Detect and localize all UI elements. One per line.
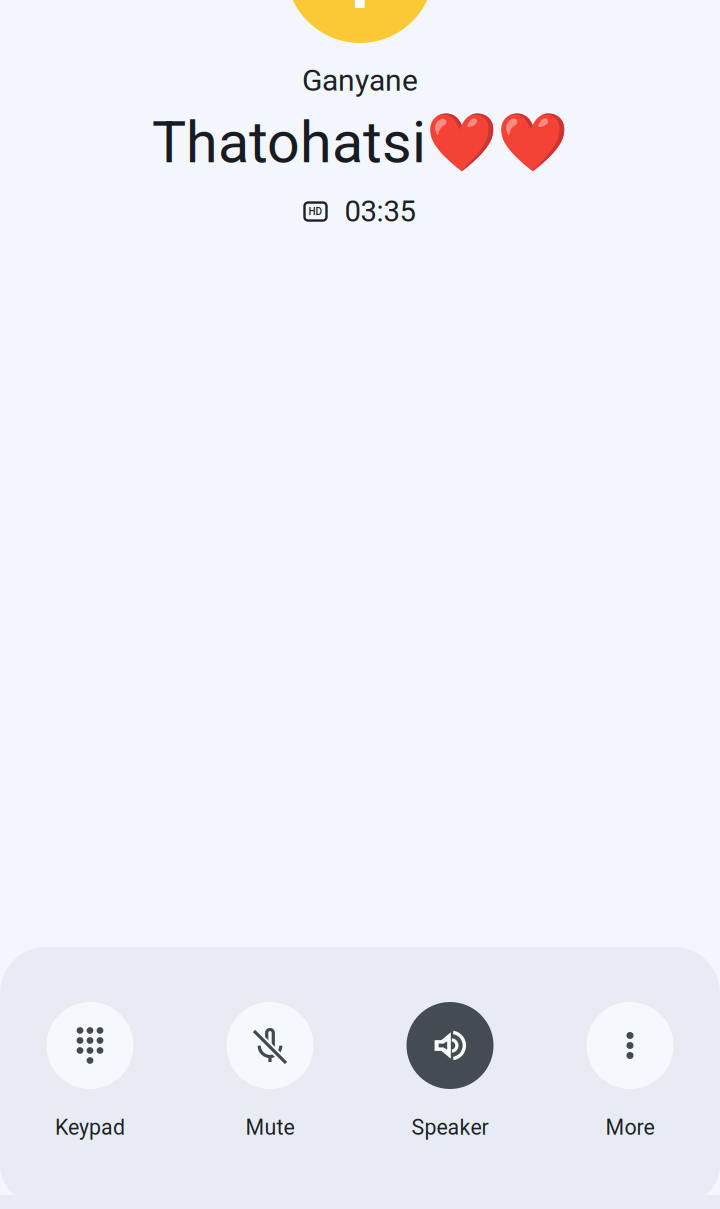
- staticText: Keypad: [55, 1115, 125, 1140]
- staticText: T: [328, 0, 392, 34]
- button[interactable]: Mute: [180, 1002, 360, 1140]
- staticText: Speaker: [411, 1115, 488, 1140]
- button[interactable]: More: [540, 1002, 720, 1140]
- staticText: Mute: [245, 1115, 294, 1140]
- staticText: Thatohatsi❤️❤️: [152, 109, 568, 176]
- staticText: Ganyane: [302, 63, 418, 98]
- staticText: More: [605, 1115, 654, 1140]
- staticText: HD: [308, 206, 322, 217]
- button[interactable]: Speaker: [360, 1002, 540, 1140]
- button[interactable]: Keypad: [0, 1002, 180, 1140]
- staticText: 03:35: [344, 194, 415, 229]
